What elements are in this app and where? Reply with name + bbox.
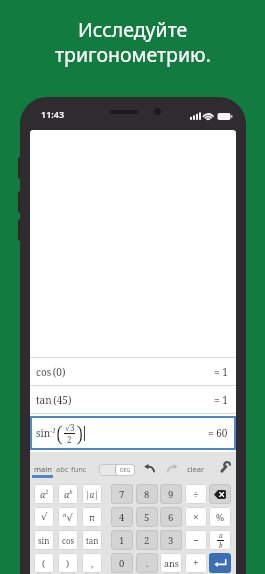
staticText: = 60 xyxy=(208,426,228,440)
staticText: 2 xyxy=(144,534,150,547)
staticText: × xyxy=(193,510,199,524)
button[interactable]: + xyxy=(185,553,207,573)
staticText: Исследуйте xyxy=(78,16,188,43)
staticText: ( xyxy=(42,557,46,569)
staticText: 4 xyxy=(119,511,125,524)
staticText: 6 xyxy=(168,511,174,524)
staticText: % xyxy=(216,511,225,523)
staticText: = 1 xyxy=(214,365,228,379)
staticText: n√ xyxy=(63,511,73,524)
staticText: sin xyxy=(38,535,50,546)
staticText: , xyxy=(91,557,94,569)
button[interactable]: 3 xyxy=(160,530,182,550)
staticText: DEG xyxy=(120,467,131,474)
button[interactable]: a xyxy=(209,530,231,550)
button[interactable]: cos xyxy=(58,530,78,550)
staticText: tan xyxy=(86,535,99,546)
staticText: |a| xyxy=(85,489,99,500)
staticText: 9 xyxy=(168,488,174,501)
staticText: 3 xyxy=(168,534,174,547)
button[interactable]: |a| xyxy=(82,484,102,504)
staticText: тригонометрию. xyxy=(55,41,211,68)
staticText: cos (0) xyxy=(36,365,66,379)
button[interactable]: 2 xyxy=(136,530,158,550)
button[interactable]: ans xyxy=(160,553,182,573)
button[interactable] xyxy=(220,462,230,473)
staticText: 5 xyxy=(144,511,150,524)
staticText: ans xyxy=(164,557,179,569)
staticText: + xyxy=(193,556,199,570)
button[interactable]: func xyxy=(71,464,87,474)
button[interactable]: n√ xyxy=(58,507,78,527)
button[interactable]: sin xyxy=(34,530,54,550)
button[interactable]: cos (0) xyxy=(30,358,236,386)
staticText: tan (45) xyxy=(36,393,72,407)
staticText: ab xyxy=(64,488,73,500)
button[interactable]: − xyxy=(185,530,207,550)
button[interactable]: DEG xyxy=(99,464,135,476)
staticText: = 1 xyxy=(214,393,228,407)
staticText: ) xyxy=(66,557,70,569)
button[interactable]: √ xyxy=(34,507,54,527)
button[interactable]: abc xyxy=(56,464,69,474)
button[interactable]: tan (45) xyxy=(30,386,236,414)
button[interactable]: 6 xyxy=(160,507,182,527)
button[interactable]: main xyxy=(34,464,52,474)
staticText: a xyxy=(219,531,223,540)
staticText: 7 xyxy=(119,488,125,501)
button[interactable] xyxy=(167,464,178,472)
staticText: √ xyxy=(41,511,48,523)
staticText: π xyxy=(89,511,95,523)
staticText: ( xyxy=(56,418,63,448)
staticText: ) xyxy=(76,418,83,448)
staticText: 8 xyxy=(144,488,150,501)
button[interactable]: , xyxy=(82,553,102,573)
staticText: sin−1 xyxy=(36,426,56,440)
staticText: cos xyxy=(62,535,75,546)
button[interactable]: . xyxy=(136,553,158,573)
button[interactable]: clear xyxy=(187,464,205,474)
staticText: 1 xyxy=(119,534,125,547)
button[interactable]: 7 xyxy=(111,484,133,504)
button[interactable]: 4 xyxy=(111,507,133,527)
staticText: − xyxy=(193,533,199,547)
staticText: a2 xyxy=(40,488,49,500)
button[interactable]: 0 xyxy=(111,553,133,573)
button[interactable]: 1 xyxy=(111,530,133,550)
button[interactable]: % xyxy=(209,507,231,527)
button[interactable]: sin−1 xyxy=(30,416,236,450)
staticText: 2 xyxy=(67,434,72,445)
staticText: 11:43 xyxy=(41,108,65,120)
button[interactable]: ÷ xyxy=(185,484,207,504)
button[interactable]: a2 xyxy=(34,484,54,504)
button[interactable]: ( xyxy=(34,553,54,573)
button[interactable]: × xyxy=(185,507,207,527)
button[interactable]: tan xyxy=(82,530,102,550)
button[interactable] xyxy=(144,464,155,472)
button[interactable]: ) xyxy=(58,553,78,573)
staticText: . xyxy=(146,557,149,570)
button[interactable]: 8 xyxy=(136,484,158,504)
staticText: b xyxy=(219,541,223,550)
button[interactable]: ab xyxy=(58,484,78,504)
button[interactable]: π xyxy=(82,507,102,527)
button[interactable]: 5 xyxy=(136,507,158,527)
staticText: 0 xyxy=(119,557,125,570)
button[interactable] xyxy=(209,484,231,504)
staticText: ÷ xyxy=(193,487,199,501)
button[interactable] xyxy=(209,553,231,573)
staticText: √3 xyxy=(65,422,75,433)
button[interactable]: 9 xyxy=(160,484,182,504)
